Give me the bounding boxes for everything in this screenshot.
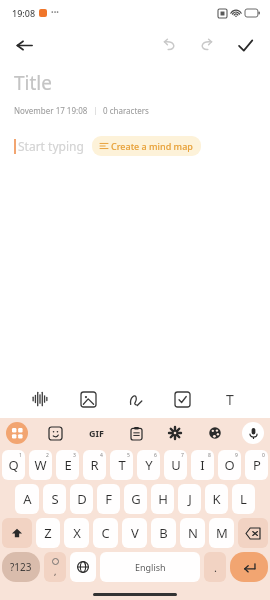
button[interactable]: V bbox=[122, 518, 147, 548]
button[interactable]: Themes bbox=[203, 421, 227, 445]
staticText: GIF bbox=[89, 427, 104, 439]
staticText: H bbox=[158, 490, 168, 508]
button[interactable]: C bbox=[93, 518, 118, 548]
button[interactable]: Save bbox=[230, 30, 260, 60]
button[interactable]: Enter bbox=[230, 552, 268, 582]
staticText: P bbox=[253, 456, 261, 474]
staticText: Q bbox=[8, 456, 19, 474]
staticText: Title bbox=[14, 70, 52, 96]
button[interactable]: G bbox=[124, 484, 147, 514]
button[interactable]: R bbox=[83, 450, 106, 480]
staticText: K bbox=[212, 490, 221, 508]
button[interactable]: K bbox=[205, 484, 228, 514]
button[interactable]: D bbox=[70, 484, 93, 514]
staticText: 5 bbox=[127, 452, 130, 459]
staticText: N bbox=[188, 524, 198, 542]
button[interactable]: Text format bbox=[213, 382, 247, 416]
staticText: Start typing bbox=[18, 138, 84, 154]
button[interactable]: Checklist bbox=[165, 382, 199, 416]
staticText: J bbox=[188, 490, 192, 508]
staticText: D bbox=[77, 490, 87, 508]
staticText: O bbox=[224, 456, 235, 474]
staticText: I bbox=[200, 456, 205, 474]
staticText: B bbox=[159, 524, 168, 542]
staticText: . bbox=[214, 560, 217, 575]
staticText: 4 bbox=[100, 452, 103, 459]
staticText: 3 bbox=[73, 452, 76, 459]
staticText: T bbox=[118, 456, 126, 474]
button[interactable]: ?123 bbox=[2, 552, 40, 582]
button[interactable]: Q bbox=[2, 450, 25, 480]
button[interactable]: Create a mind map bbox=[92, 136, 201, 156]
staticText: X bbox=[73, 524, 81, 542]
staticText: Create a mind map bbox=[111, 140, 193, 152]
button[interactable]: L bbox=[232, 484, 255, 514]
button[interactable]: X bbox=[64, 518, 89, 548]
staticText: V bbox=[131, 524, 139, 542]
staticText: 0 characters bbox=[103, 105, 149, 116]
button[interactable]: Keyboard modes bbox=[6, 422, 28, 444]
button[interactable]: Audio bbox=[23, 382, 57, 416]
button[interactable]: Settings bbox=[163, 421, 187, 445]
button[interactable]: . bbox=[204, 552, 226, 582]
button[interactable]: GIF bbox=[83, 420, 109, 446]
button[interactable]: Stickers bbox=[43, 421, 67, 445]
staticText: R bbox=[90, 456, 99, 474]
button[interactable]: O bbox=[218, 450, 241, 480]
button[interactable]: Clipboard bbox=[124, 421, 148, 445]
staticText: W bbox=[34, 456, 47, 474]
staticText: 7 bbox=[181, 452, 184, 459]
button[interactable]: A bbox=[15, 484, 39, 514]
button[interactable]: Redo bbox=[192, 30, 222, 60]
staticText: U bbox=[171, 456, 181, 474]
button[interactable]: E bbox=[56, 450, 79, 480]
staticText: M bbox=[216, 524, 228, 542]
button[interactable]: Image bbox=[71, 382, 105, 416]
staticText: 6 bbox=[154, 452, 157, 459]
button[interactable]: Draw bbox=[118, 382, 152, 416]
button[interactable]: Z bbox=[36, 518, 60, 548]
staticText: S bbox=[51, 490, 59, 508]
button[interactable]: J bbox=[178, 484, 201, 514]
staticText: E bbox=[64, 456, 72, 474]
button[interactable]: Backspace bbox=[238, 518, 268, 548]
button[interactable]: U bbox=[164, 450, 187, 480]
staticText: 9 bbox=[235, 452, 238, 459]
button[interactable]: Emoji and comma bbox=[44, 552, 66, 582]
staticText: T bbox=[226, 390, 234, 409]
staticText: Y bbox=[145, 456, 153, 474]
button[interactable]: T bbox=[110, 450, 133, 480]
staticText: 8 bbox=[208, 452, 211, 459]
button[interactable]: P bbox=[245, 450, 268, 480]
button[interactable]: N bbox=[180, 518, 205, 548]
button[interactable]: S bbox=[43, 484, 66, 514]
button[interactable]: English bbox=[100, 552, 200, 582]
button[interactable]: Back bbox=[8, 29, 40, 61]
button[interactable]: Voice input bbox=[242, 422, 264, 444]
staticText: G bbox=[131, 490, 141, 508]
button[interactable]: Shift bbox=[2, 518, 32, 548]
button[interactable]: Change language bbox=[70, 552, 96, 582]
button[interactable]: Y bbox=[137, 450, 160, 480]
staticText: C bbox=[101, 524, 110, 542]
button[interactable]: B bbox=[151, 518, 176, 548]
button[interactable]: F bbox=[97, 484, 120, 514]
staticText: Z bbox=[44, 524, 52, 542]
button[interactable]: W bbox=[29, 450, 52, 480]
staticText: ?123 bbox=[10, 560, 32, 574]
staticText: F bbox=[105, 490, 112, 508]
button[interactable]: Undo bbox=[154, 30, 184, 60]
staticText: ••• bbox=[51, 8, 59, 18]
staticText: 0 bbox=[262, 452, 265, 459]
staticText: November 17 19:08 bbox=[14, 105, 88, 116]
staticText: English bbox=[135, 561, 166, 573]
staticText: A bbox=[23, 490, 32, 508]
staticText: , bbox=[54, 565, 57, 577]
staticText: 2 bbox=[46, 452, 49, 459]
button[interactable]: M bbox=[209, 518, 234, 548]
staticText: 1 bbox=[19, 452, 22, 459]
button[interactable]: I bbox=[191, 450, 214, 480]
button[interactable]: H bbox=[151, 484, 174, 514]
staticText: 19:08 bbox=[12, 7, 36, 19]
staticText: L bbox=[240, 490, 247, 508]
